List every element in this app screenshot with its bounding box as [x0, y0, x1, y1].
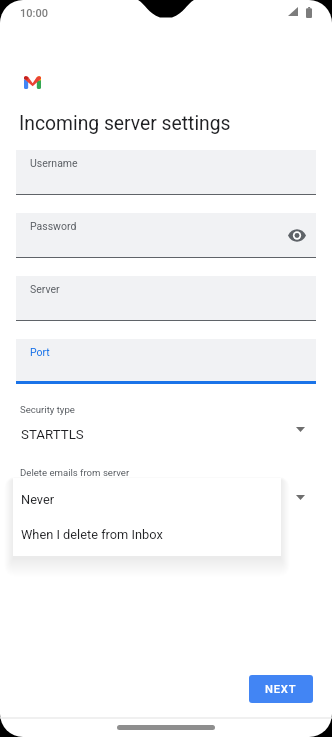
button[interactable]: NEXT: [249, 675, 313, 703]
button[interactable]: Never: [13, 483, 281, 516]
button[interactable]: Security type: [0, 401, 332, 447]
staticText: Incoming server settings: [19, 112, 231, 135]
button[interactable]: Delete emails from server: [0, 464, 332, 510]
staticText: Password: [30, 220, 77, 232]
staticText: STARTTLS: [21, 427, 84, 443]
staticText: NEXT: [265, 683, 297, 696]
staticText: Never: [21, 492, 55, 507]
staticText: When I delete from Inbox: [21, 527, 163, 542]
button[interactable]: Show password: [280, 218, 314, 252]
staticText: 10:00: [20, 7, 48, 20]
button[interactable]: Port: [16, 339, 316, 384]
staticText: Port: [30, 346, 50, 358]
button[interactable]: Server: [16, 276, 316, 321]
staticText: Security type: [20, 404, 75, 415]
staticText: Username: [30, 157, 78, 169]
button[interactable]: Password: [16, 213, 316, 258]
button[interactable]: Username: [16, 150, 316, 195]
staticText: Delete emails from server: [20, 467, 130, 478]
button[interactable]: When I delete from Inbox: [13, 518, 281, 551]
staticText: Server: [30, 283, 60, 295]
staticText: Never: [21, 490, 56, 506]
